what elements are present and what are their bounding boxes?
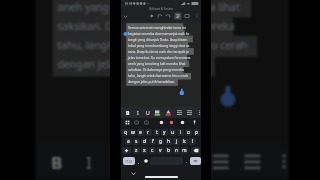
staticText: n xyxy=(175,147,179,154)
button[interactable]: w xyxy=(129,129,136,136)
button[interactable]: Keyboard tool 1 xyxy=(133,119,140,126)
staticText: t xyxy=(156,129,158,136)
button[interactable]: f xyxy=(149,138,156,145)
button[interactable]: Keyboard tool 5 xyxy=(179,119,186,126)
button[interactable]: , xyxy=(136,157,141,165)
staticText: B xyxy=(126,109,130,116)
button[interactable]: l xyxy=(189,138,196,145)
button[interactable]: a xyxy=(125,138,132,145)
button[interactable]: Italic xyxy=(73,144,102,179)
button[interactable]: Italic xyxy=(133,107,142,118)
staticText: B xyxy=(51,150,64,172)
button[interactable]: u xyxy=(169,129,176,136)
button[interactable]: m xyxy=(181,147,188,154)
staticText: z xyxy=(135,147,138,154)
button[interactable]: Backspace xyxy=(191,147,200,154)
button[interactable]: n xyxy=(173,147,180,154)
button[interactable]: Keyboard tool 0 xyxy=(124,119,131,126)
button[interactable]: Highlight xyxy=(153,107,162,118)
staticText: saksikan. Di dalamnya pergi mereka xyxy=(128,67,184,71)
button[interactable]: Comment xyxy=(183,12,191,20)
button[interactable]: List xyxy=(185,107,194,118)
staticText: tebal yang membumbung tinggi dari sa xyxy=(128,43,190,47)
staticText: I xyxy=(86,150,92,172)
button[interactable]: Keyboard tool 2 xyxy=(143,119,150,126)
staticText: j xyxy=(176,138,178,145)
staticText: d xyxy=(143,138,147,145)
button[interactable]: Keyboard tool 6 xyxy=(191,119,198,126)
staticText: v xyxy=(159,147,162,154)
button[interactable]: q xyxy=(122,129,129,136)
staticText: I xyxy=(137,109,139,116)
button[interactable]: x xyxy=(141,147,148,154)
button[interactable]: Keyboard tool 4 xyxy=(168,119,175,126)
button[interactable]: Bold xyxy=(42,144,70,179)
staticText: a xyxy=(127,138,130,145)
staticText: u xyxy=(171,129,175,136)
staticText: p xyxy=(195,129,199,136)
button[interactable]: List xyxy=(238,144,267,179)
staticText: aneh yang berulang kali mereka lihat xyxy=(128,61,186,65)
button[interactable]: Underline xyxy=(143,107,152,118)
button[interactable]: s xyxy=(133,138,140,145)
staticText: . xyxy=(186,159,188,164)
button[interactable]: g xyxy=(157,138,164,145)
staticText: jelas tersebut. Itu merupakan fenomena xyxy=(128,55,191,59)
button[interactable]: h xyxy=(165,138,172,145)
button[interactable]: ?123 xyxy=(123,157,135,165)
button[interactable]: d xyxy=(141,138,148,145)
button[interactable]: p xyxy=(193,129,200,136)
button[interactable]: Align xyxy=(175,107,184,118)
button[interactable]: More xyxy=(195,107,204,118)
button[interactable]: Redo xyxy=(164,12,172,20)
button[interactable]: c xyxy=(149,147,156,154)
staticText: g xyxy=(159,138,163,145)
staticText: l xyxy=(192,138,194,145)
button[interactable]: Highlight xyxy=(137,144,165,179)
button[interactable]: v xyxy=(157,147,164,154)
staticText: tahu, langit selalu berwarna biru cerah xyxy=(128,73,188,77)
button[interactable]: b xyxy=(165,147,172,154)
staticText: r xyxy=(147,129,150,136)
staticText: x xyxy=(143,147,146,154)
staticText: aneh yang berulang kali mereka lihat xyxy=(57,0,241,11)
button[interactable]: Enter xyxy=(190,157,201,165)
staticText: e xyxy=(139,129,142,136)
button[interactable]: e xyxy=(137,129,144,136)
button[interactable]: Hide keyboard xyxy=(130,170,137,177)
staticText: q xyxy=(124,129,128,136)
button[interactable]: Format xyxy=(174,12,182,20)
button[interactable]: More xyxy=(270,144,298,179)
button[interactable]: Underline xyxy=(105,144,134,179)
button[interactable]: Emoji xyxy=(142,157,149,165)
staticText: saksikan. Di dalamnya pergi mereka xyxy=(57,17,235,30)
button[interactable]: More options xyxy=(193,12,201,20)
button[interactable]: Present xyxy=(148,12,156,20)
button[interactable]: Align xyxy=(206,144,235,179)
button[interactable]: Bold xyxy=(123,107,132,118)
button[interactable]: Shift xyxy=(122,147,131,154)
staticText: Semua astronot menghindari area ini xyxy=(128,25,186,29)
button[interactable]: Undo xyxy=(156,12,164,20)
button[interactable]: k xyxy=(181,138,188,145)
button[interactable]: . xyxy=(184,157,189,165)
staticText: sana. Asap itu terus naik dan tampak je xyxy=(128,49,189,53)
button[interactable]: z xyxy=(133,147,140,154)
staticText: U xyxy=(115,150,127,172)
button[interactable]: i xyxy=(177,129,184,136)
button[interactable]: y xyxy=(161,129,168,136)
button[interactable]: Text colour xyxy=(164,107,173,118)
button[interactable]: Text colour xyxy=(172,144,200,179)
button[interactable]: t xyxy=(153,129,160,136)
staticText: b xyxy=(167,147,171,154)
button[interactable]: Done xyxy=(122,13,129,20)
button[interactable]: r xyxy=(145,129,152,136)
staticText: s xyxy=(135,138,138,145)
button[interactable]: Keyboard tool 3 xyxy=(158,119,165,126)
button[interactable]: j xyxy=(173,138,180,145)
staticText: Bahasa & Sastra xyxy=(149,7,173,11)
staticText: kegiatan mereka dan memanjat naik ke xyxy=(128,31,190,35)
button[interactable]: o xyxy=(185,129,192,136)
staticText: ?123 xyxy=(125,159,133,164)
